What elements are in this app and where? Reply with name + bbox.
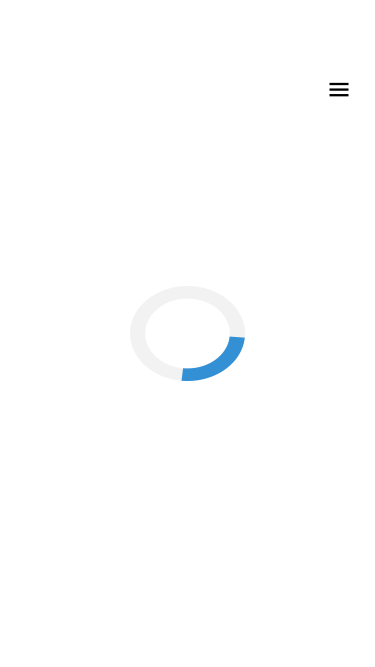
- button[interactable]: Menu: [317, 68, 361, 112]
